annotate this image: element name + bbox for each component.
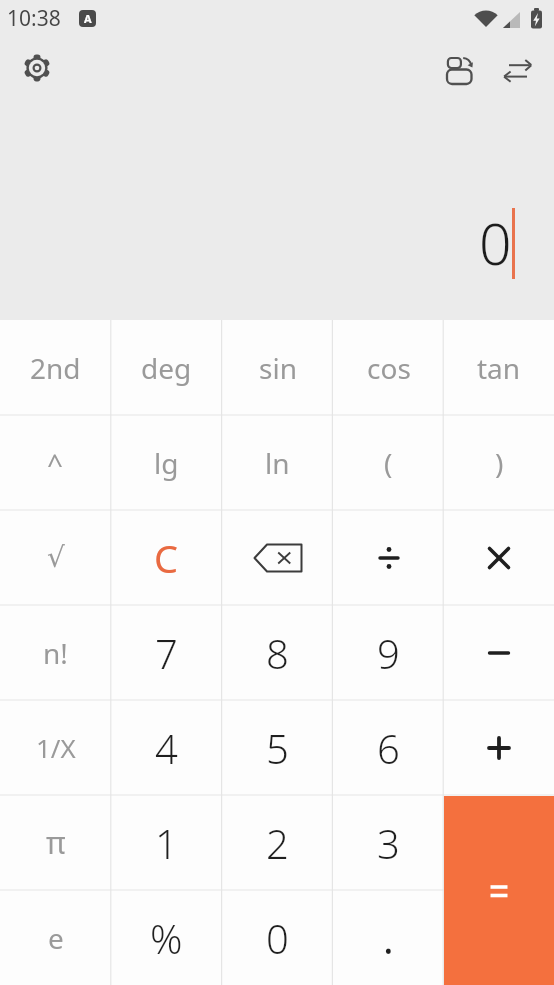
staticText: deg bbox=[141, 349, 192, 387]
button[interactable] bbox=[445, 55, 475, 85]
button[interactable]: n! bbox=[0, 605, 111, 700]
staticText: tan bbox=[477, 349, 521, 387]
staticText: lg bbox=[154, 444, 179, 482]
staticText: n! bbox=[43, 634, 68, 672]
button[interactable]: C bbox=[111, 510, 222, 605]
staticText: C bbox=[154, 532, 179, 584]
button[interactable]: π bbox=[0, 795, 111, 890]
staticText: 0 bbox=[479, 204, 512, 282]
button[interactable]: 4 bbox=[111, 700, 222, 795]
button[interactable] bbox=[444, 605, 554, 700]
staticText: 3 bbox=[377, 816, 400, 870]
staticText: 2 bbox=[266, 816, 289, 870]
button[interactable]: 3 bbox=[333, 795, 444, 890]
staticText: ln bbox=[265, 444, 290, 482]
button[interactable] bbox=[333, 510, 444, 605]
button[interactable]: . bbox=[333, 890, 444, 985]
button[interactable]: ln bbox=[222, 415, 333, 510]
staticText: ) bbox=[495, 444, 504, 482]
staticText: 10:38 bbox=[7, 4, 61, 33]
staticText: sin bbox=[259, 349, 297, 387]
button[interactable]: ^ bbox=[0, 415, 111, 510]
staticText: 6 bbox=[377, 721, 400, 775]
staticText: 7 bbox=[155, 626, 178, 680]
button[interactable]: sin bbox=[222, 320, 333, 415]
button[interactable]: cos bbox=[333, 320, 444, 415]
staticText: ( bbox=[384, 444, 393, 482]
staticText: 1 bbox=[155, 816, 178, 870]
button[interactable]: 1/X bbox=[0, 700, 111, 795]
staticText: 8 bbox=[266, 626, 289, 680]
staticText: e bbox=[48, 919, 64, 957]
button[interactable]: √ bbox=[0, 510, 111, 605]
staticText: % bbox=[150, 911, 183, 965]
button[interactable]: 5 bbox=[222, 700, 333, 795]
staticText: cos bbox=[367, 349, 411, 387]
staticText: 9 bbox=[377, 626, 400, 680]
staticText: ^ bbox=[47, 444, 64, 482]
staticText: 4 bbox=[155, 721, 178, 775]
button[interactable]: ( bbox=[333, 415, 444, 510]
button[interactable]: lg bbox=[111, 415, 222, 510]
button[interactable]: % bbox=[111, 890, 222, 985]
button[interactable]: 2nd bbox=[0, 320, 111, 415]
button[interactable]: 8 bbox=[222, 605, 333, 700]
button[interactable] bbox=[222, 510, 333, 605]
staticText: . bbox=[383, 911, 394, 965]
button[interactable]: ) bbox=[444, 415, 554, 510]
button[interactable]: 0 bbox=[222, 890, 333, 985]
button[interactable]: 9 bbox=[333, 605, 444, 700]
button[interactable]: 6 bbox=[333, 700, 444, 795]
button[interactable]: deg bbox=[111, 320, 222, 415]
button[interactable]: 2 bbox=[222, 795, 333, 890]
button[interactable]: tan bbox=[444, 320, 554, 415]
button[interactable] bbox=[444, 796, 554, 985]
staticText: 1/X bbox=[36, 730, 76, 765]
staticText: 2nd bbox=[30, 349, 81, 387]
staticText: 0 bbox=[266, 911, 289, 965]
button[interactable] bbox=[444, 700, 554, 795]
staticText: 5 bbox=[266, 721, 289, 775]
button[interactable] bbox=[22, 53, 52, 83]
staticText: A bbox=[84, 11, 92, 26]
staticText: π bbox=[46, 822, 66, 863]
button[interactable]: 1 bbox=[111, 795, 222, 890]
staticText: √ bbox=[47, 541, 65, 574]
button[interactable] bbox=[503, 57, 533, 87]
button[interactable] bbox=[444, 510, 554, 605]
button[interactable]: 7 bbox=[111, 605, 222, 700]
button[interactable]: e bbox=[0, 890, 111, 985]
